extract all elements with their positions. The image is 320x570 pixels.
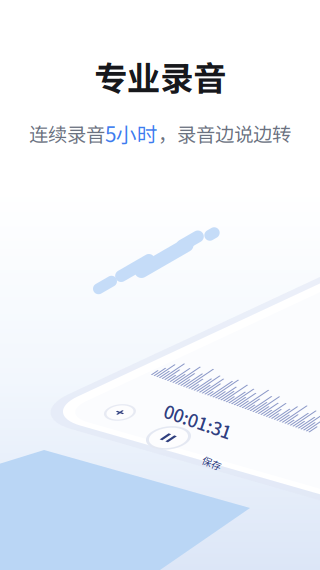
staticText: 00:01:31 — [163, 408, 233, 434]
staticText: 保存 — [202, 456, 222, 470]
staticText: 5小时 — [105, 118, 158, 148]
staticText: ，录音边说边转 — [158, 119, 291, 147]
staticText: 专业录音 — [94, 52, 226, 100]
staticText: 连续录音 — [29, 119, 105, 147]
